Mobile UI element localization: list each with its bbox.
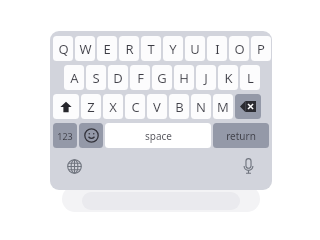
- button[interactable]: T: [141, 36, 161, 61]
- button[interactable]: B: [169, 94, 189, 119]
- staticText: V: [153, 98, 161, 116]
- button[interactable]: S: [86, 65, 106, 90]
- staticText: S: [92, 69, 100, 87]
- button[interactable]: C: [125, 94, 145, 119]
- staticText: E: [103, 40, 111, 58]
- staticText: Y: [169, 40, 177, 58]
- button[interactable]: 123: [53, 123, 77, 148]
- staticText: D: [113, 69, 123, 87]
- button[interactable]: M: [213, 94, 233, 119]
- button[interactable]: R: [119, 36, 139, 61]
- button[interactable]: space: [105, 123, 211, 148]
- staticText: Q: [58, 40, 69, 58]
- button[interactable]: D: [108, 65, 128, 90]
- staticText: W: [79, 40, 92, 58]
- button[interactable]: Q: [53, 36, 73, 61]
- button[interactable]: Y: [163, 36, 183, 61]
- button[interactable]: J: [196, 65, 216, 90]
- staticText: A: [70, 69, 79, 87]
- button[interactable]: O: [229, 36, 249, 61]
- staticText: F: [137, 69, 144, 87]
- staticText: R: [125, 40, 134, 58]
- button[interactable]: return: [213, 123, 269, 148]
- staticText: T: [147, 40, 155, 58]
- staticText: X: [109, 98, 117, 116]
- staticText: O: [234, 40, 245, 58]
- staticText: I: [215, 40, 220, 58]
- staticText: 123: [57, 130, 73, 142]
- button[interactable]: U: [185, 36, 205, 61]
- button[interactable]: P: [251, 36, 271, 61]
- button[interactable]: G: [152, 65, 172, 90]
- button[interactable]: I: [207, 36, 227, 61]
- staticText: N: [196, 98, 206, 116]
- staticText: G: [157, 69, 167, 87]
- button[interactable]: V: [147, 94, 167, 119]
- staticText: B: [175, 98, 184, 116]
- button[interactable]: E: [97, 36, 117, 61]
- staticText: return: [226, 129, 256, 143]
- staticText: Z: [87, 98, 95, 116]
- button[interactable]: N: [191, 94, 211, 119]
- button[interactable]: H: [174, 65, 194, 90]
- button[interactable]: A: [64, 65, 84, 90]
- button[interactable]: L: [240, 65, 260, 90]
- staticText: J: [204, 69, 208, 87]
- staticText: L: [247, 69, 254, 87]
- staticText: space: [145, 129, 172, 143]
- staticText: M: [217, 98, 229, 116]
- button[interactable]: X: [103, 94, 123, 119]
- staticText: K: [224, 69, 233, 87]
- button[interactable]: Change keyboard language: [63, 155, 85, 177]
- staticText: U: [190, 40, 200, 58]
- button[interactable]: Voice input: [237, 155, 259, 177]
- button[interactable]: Shift: [53, 94, 79, 119]
- button[interactable]: F: [130, 65, 150, 90]
- staticText: H: [179, 69, 189, 87]
- button[interactable]: Backspace: [235, 94, 261, 119]
- button[interactable]: K: [218, 65, 238, 90]
- button[interactable]: Z: [81, 94, 101, 119]
- staticText: P: [257, 40, 265, 58]
- button[interactable]: W: [75, 36, 95, 61]
- button[interactable]: Emoji: [79, 123, 103, 148]
- staticText: C: [131, 98, 140, 116]
